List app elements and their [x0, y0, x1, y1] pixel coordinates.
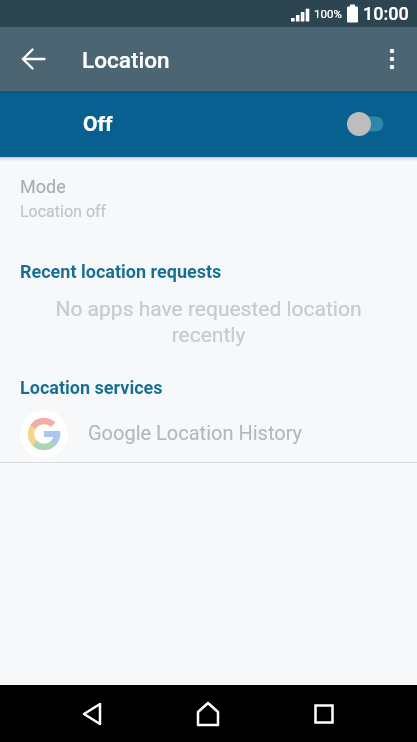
- staticText: Google Location History: [88, 421, 303, 444]
- staticText: Off: [83, 112, 113, 137]
- button[interactable]: Google Location History: [0, 402, 417, 462]
- staticText: 100%: [314, 7, 342, 20]
- staticText: No apps have requested location recently: [0, 297, 417, 347]
- button[interactable]: Mode: [0, 165, 417, 229]
- staticText: Location services: [20, 377, 163, 398]
- button[interactable]: [300, 690, 348, 738]
- button[interactable]: [68, 690, 116, 738]
- button[interactable]: Off: [0, 91, 417, 157]
- staticText: Mode: [20, 176, 66, 197]
- staticText: Location off: [20, 202, 107, 221]
- staticText: Location: [82, 47, 170, 73]
- button[interactable]: [12, 37, 56, 81]
- button[interactable]: [371, 38, 413, 80]
- staticText: 10:00: [363, 3, 409, 24]
- button[interactable]: [184, 690, 232, 738]
- staticText: Recent location requests: [20, 261, 222, 282]
